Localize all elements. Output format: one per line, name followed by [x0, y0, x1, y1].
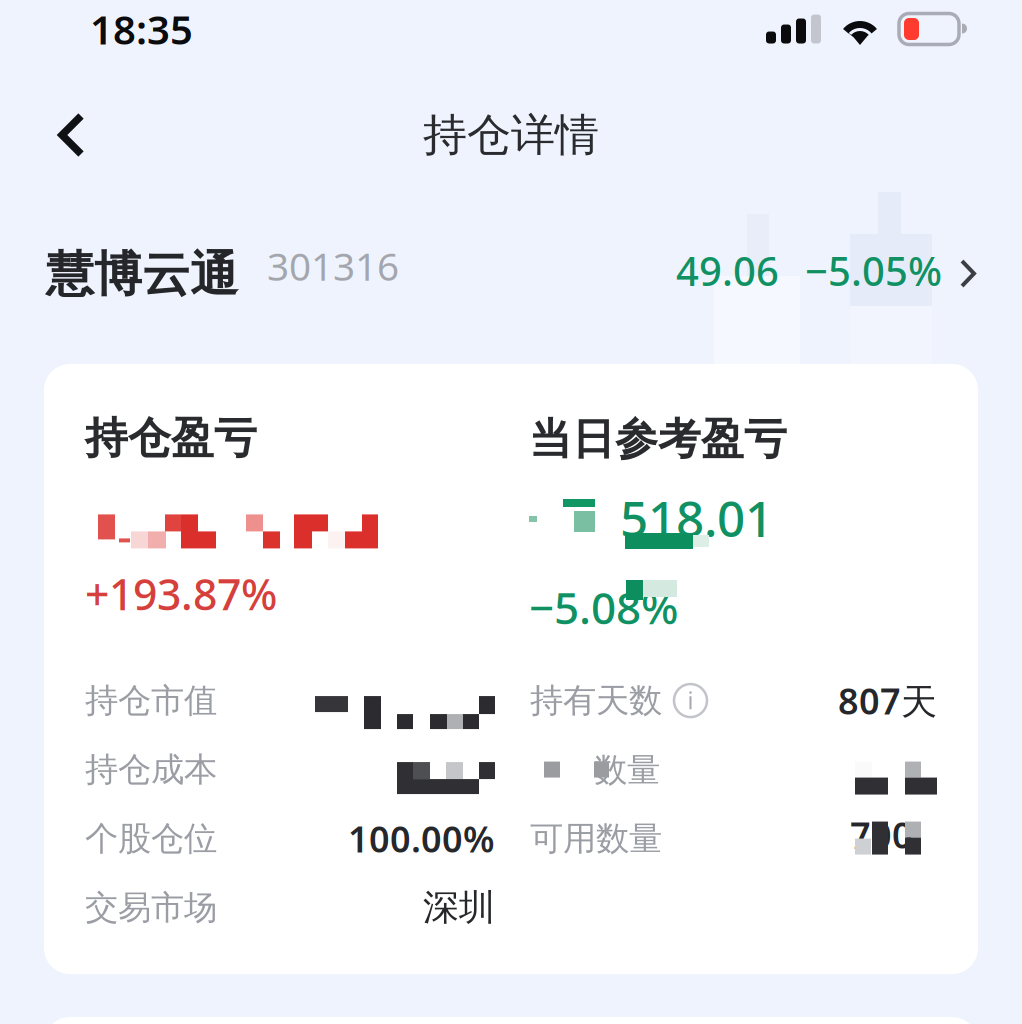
staticText: 当日参考盈亏: [529, 413, 787, 465]
staticText: 可用数量: [530, 818, 662, 859]
staticText: 深圳: [423, 885, 495, 930]
staticText: 交易市场: [85, 887, 217, 928]
staticText: i: [687, 685, 693, 716]
staticText: 100.00%: [348, 815, 495, 862]
staticText: +193.87%: [85, 565, 277, 622]
staticText: 持仓市值: [85, 680, 217, 721]
staticText: −5.05%: [805, 244, 942, 297]
staticText: 700: [850, 811, 913, 858]
staticText: 个股仓位: [85, 818, 217, 859]
staticText: 持仓详情: [423, 108, 599, 162]
button[interactable]: 慧博云通: [0, 227, 1022, 295]
staticText: 持仓成本: [85, 749, 217, 790]
button[interactable]: Back: [29, 90, 114, 180]
staticText: −5.08%: [529, 578, 678, 636]
staticText: 慧博云通: [46, 245, 238, 304]
staticText: 18:35: [90, 2, 193, 55]
staticText: 持有天数: [530, 680, 662, 721]
staticText: 301316: [267, 240, 399, 291]
staticText: 数量: [594, 750, 660, 790]
staticText: 49.06: [676, 244, 779, 297]
staticText: 518.01: [620, 485, 773, 550]
staticText: 持仓盈亏: [85, 412, 257, 464]
staticText: 807天: [838, 677, 937, 724]
